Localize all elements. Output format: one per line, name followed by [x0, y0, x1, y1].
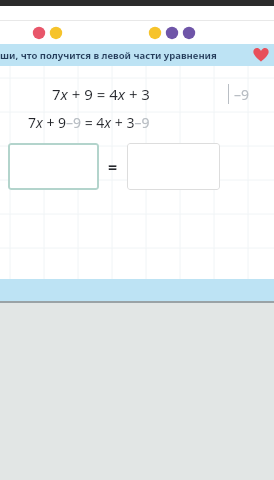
button[interactable]: Favourite: [251, 45, 271, 65]
staticText: 7x + 9 = 4x + 3: [52, 84, 150, 104]
button[interactable]: [8, 143, 99, 190]
staticText: ши, что получится в левой части уравнени…: [0, 49, 217, 62]
staticText: =: [108, 156, 118, 178]
staticText: –9: [234, 85, 250, 104]
staticText: 7x + 9–9 = 4x + 3–9: [28, 113, 150, 132]
button[interactable]: [127, 143, 220, 190]
